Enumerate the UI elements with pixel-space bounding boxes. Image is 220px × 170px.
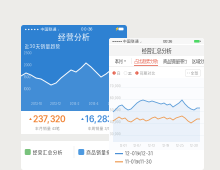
staticText: 本月 <box>115 58 123 64</box>
staticText: ▲ <box>81 117 84 121</box>
staticText: 2013-12 <box>50 102 61 106</box>
staticText: 2014-4 <box>88 102 98 106</box>
staticText: 2014-2 <box>69 102 79 106</box>
staticText: 12-25 <box>176 144 184 147</box>
button[interactable]: 商品销量排行 <box>162 56 188 66</box>
staticText: 12-19 <box>162 144 169 147</box>
staticText: 同期对比 <box>139 70 155 76</box>
staticText: 16,283.5 <box>85 114 120 124</box>
staticText: 11-01到11-30 <box>125 159 152 164</box>
staticText: ▾ <box>124 59 126 63</box>
staticText: 12-13 <box>148 144 155 147</box>
staticText: 商品销量排 <box>86 149 111 155</box>
staticText: 商品销量排行 <box>163 58 187 64</box>
staticText: 60,000 <box>110 96 121 100</box>
staticText: 全部 <box>190 70 198 76</box>
staticText: 本月销量 43笔 <box>35 126 60 131</box>
staticText: ∷ <box>187 71 189 75</box>
staticText: 区域分 <box>192 58 204 64</box>
staticText: 中国联通 <box>122 39 140 44</box>
staticText: ••••• <box>112 39 122 44</box>
staticText: 黑 <box>128 70 132 76</box>
button[interactable]: 经营汇总分析 <box>21 143 74 161</box>
button[interactable]: ∷ <box>185 69 200 77</box>
staticText: ▲ <box>29 117 32 121</box>
staticText: 本周销量 3/7笔 <box>87 126 113 131</box>
staticText: 2500 <box>23 51 31 55</box>
staticText: 经营汇总分析 <box>141 47 171 54</box>
button[interactable]: 本月 <box>111 56 130 66</box>
staticText: 占比趋势分析 <box>134 58 158 64</box>
staticText: 12-30 <box>190 144 198 147</box>
staticText: 中国联通 <box>39 26 57 32</box>
staticText: 1000 <box>23 87 30 91</box>
button[interactable]: 同期对比 <box>135 70 155 76</box>
staticText: 2014-6 <box>107 102 117 106</box>
staticText: ⚡ <box>114 27 118 31</box>
staticText: 30,000 <box>110 132 121 136</box>
staticText: ◞ <box>140 39 141 43</box>
staticText: 近30天销量趋势 <box>24 42 60 49</box>
staticText: 经营分析 <box>58 31 90 43</box>
staticText: 237,320 <box>33 114 66 124</box>
staticText: 00:36 <box>163 39 172 43</box>
staticText: 经营汇总分析 <box>33 149 63 155</box>
staticText: 50,000 <box>110 108 121 112</box>
staticText: 12-01 <box>120 144 127 147</box>
button[interactable]: 商品销量排 <box>74 143 127 161</box>
button[interactable]: 区域分 <box>190 56 206 66</box>
staticText: 40,000 <box>110 120 121 124</box>
staticText: 00:36 <box>81 27 92 31</box>
button[interactable]: 占比趋势分析 <box>133 56 159 66</box>
staticText: 2000 <box>23 63 31 67</box>
button[interactable]: 白 <box>112 70 121 76</box>
staticText: 12-07 <box>133 144 141 147</box>
staticText: 12-01到12-31 <box>125 151 153 156</box>
staticText: 1500 <box>23 75 30 79</box>
button[interactable]: 黑 <box>124 70 132 76</box>
staticText: 2013-10 <box>31 102 42 106</box>
staticText: ••••• <box>24 26 39 32</box>
staticText: 70,000 <box>110 84 121 88</box>
staticText: 白 <box>117 70 121 76</box>
